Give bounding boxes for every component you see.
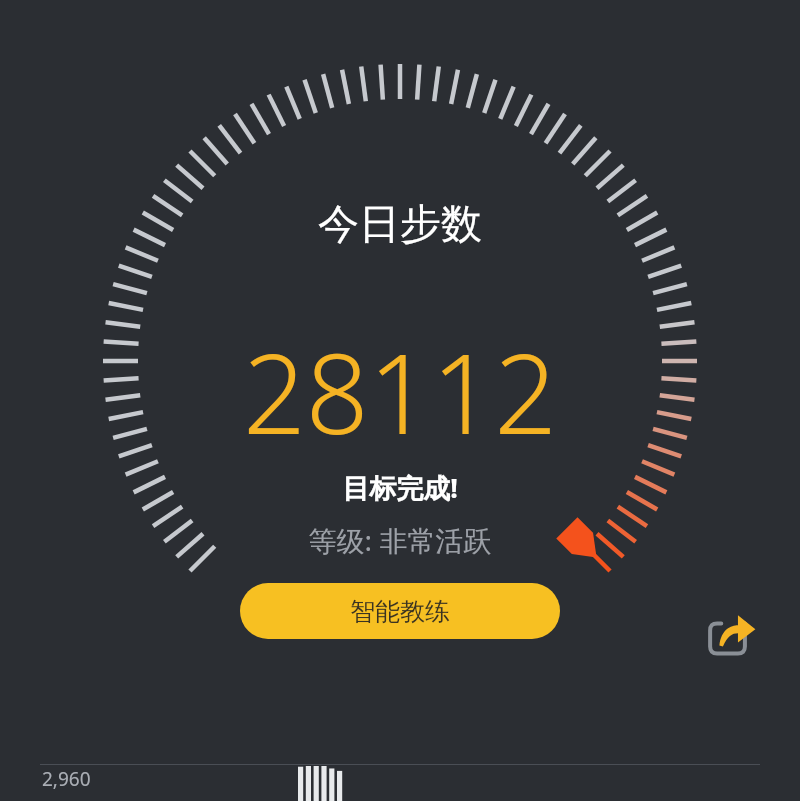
button[interactable]: 智能教练 bbox=[240, 583, 560, 639]
staticText: 2,960 bbox=[42, 766, 91, 792]
staticText: 今日步数 bbox=[200, 199, 600, 251]
staticText: 目标完成! bbox=[150, 469, 650, 506]
staticText: 28112 bbox=[100, 316, 700, 466]
button[interactable]: Share bbox=[702, 606, 760, 664]
staticText: 智能教练 bbox=[350, 596, 450, 627]
staticText: 等级: 非常活跃 bbox=[150, 521, 650, 559]
